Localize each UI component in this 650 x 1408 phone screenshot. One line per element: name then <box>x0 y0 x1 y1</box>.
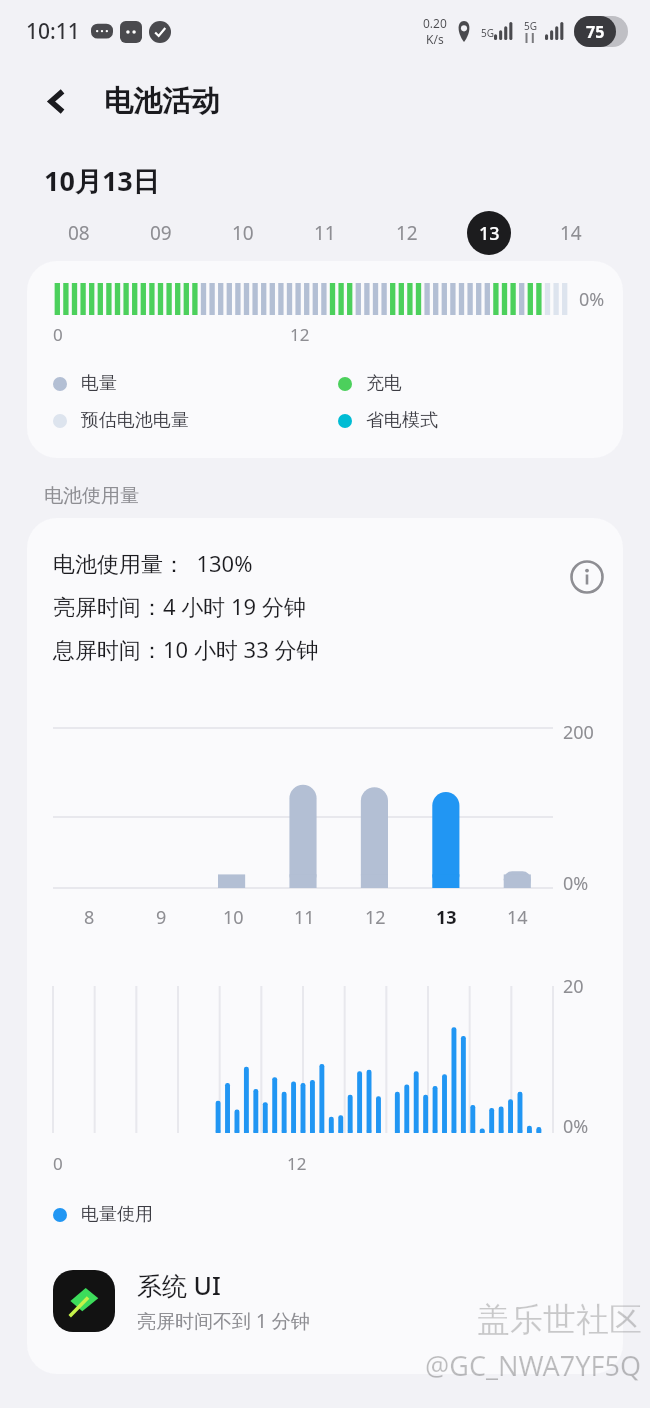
staticText: 亮屏时间不到 1 分钟 <box>137 1308 310 1334</box>
button[interactable]: 系统 UI <box>27 1268 623 1334</box>
staticText: 11 <box>294 905 315 930</box>
button[interactable]: 08 <box>38 209 120 257</box>
staticText: 8 <box>84 905 95 930</box>
staticText: 电量使用 <box>81 1203 153 1226</box>
staticText: 0.20 <box>423 15 447 31</box>
staticText: 0 <box>53 1152 63 1175</box>
staticText: 电池使用量 <box>44 484 139 508</box>
staticText: K/s <box>426 31 444 47</box>
staticText: 盖乐世社区 <box>477 1299 642 1341</box>
staticText: 充电 <box>366 372 402 395</box>
staticText: 10月13日 <box>44 162 160 199</box>
staticText: 10 <box>232 220 254 246</box>
staticText: 电池活动 <box>104 83 220 120</box>
staticText: 08 <box>68 220 90 246</box>
staticText: 电池使用量： 130% <box>53 548 253 578</box>
staticText: 0% <box>563 1114 589 1139</box>
staticText: 09 <box>150 220 172 246</box>
staticText: 5G <box>524 19 537 33</box>
staticText: 20 <box>563 974 584 999</box>
staticText: 0 <box>53 323 63 346</box>
button[interactable]: 12 <box>366 209 448 257</box>
staticText: 亮屏时间：4 小时 19 分钟 <box>53 591 306 621</box>
staticText: 12 <box>290 323 310 346</box>
staticText: 12 <box>365 905 386 930</box>
staticText: 10 <box>223 905 244 930</box>
button[interactable]: 10 <box>202 209 284 257</box>
staticText: 75 <box>586 21 605 43</box>
button[interactable]: 13 <box>448 209 530 257</box>
staticText: 13 <box>436 905 457 930</box>
staticText: 预估电池电量 <box>81 409 189 432</box>
staticText: 13 <box>479 221 500 246</box>
staticText: 省电模式 <box>366 409 438 432</box>
staticText: 0% <box>563 871 589 896</box>
staticText: 14 <box>507 905 528 930</box>
staticText: 电量 <box>81 372 117 395</box>
button[interactable]: 14 <box>530 209 612 257</box>
staticText: 10:11 <box>26 17 80 46</box>
staticText: 9 <box>156 905 167 930</box>
staticText: @GC_NWA7YF5Q <box>425 1347 642 1384</box>
staticText: 14 <box>560 220 582 246</box>
staticText: 12 <box>396 220 418 246</box>
button[interactable]: Back <box>34 78 80 124</box>
button[interactable]: 09 <box>120 209 202 257</box>
staticText: 12 <box>287 1152 307 1175</box>
staticText: 息屏时间：10 小时 33 分钟 <box>53 634 319 664</box>
button[interactable]: 11 <box>284 209 366 257</box>
staticText: 11 <box>314 220 336 246</box>
staticText: 系统 UI <box>137 1268 221 1302</box>
button[interactable]: Info <box>565 548 609 606</box>
staticText: 200 <box>563 720 594 745</box>
staticText: 0% <box>579 287 605 312</box>
staticText: 5G <box>481 26 494 40</box>
